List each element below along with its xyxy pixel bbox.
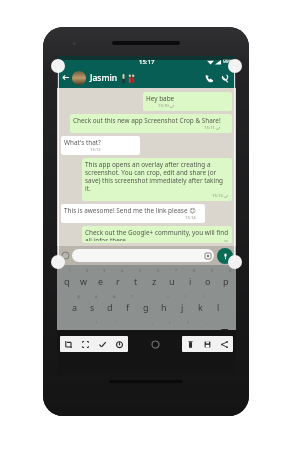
- button[interactable]: 3: [92, 267, 109, 293]
- staticText: ,: [206, 320, 207, 325]
- button[interactable]: Crop handle: [51, 59, 65, 73]
- button[interactable]: Save: [199, 336, 216, 352]
- staticText: c: [128, 328, 133, 340]
- button[interactable]: This app opens an overlay after creating…: [82, 158, 232, 201]
- button[interactable]: What's that?: [61, 136, 140, 155]
- button[interactable]: 2: [75, 267, 92, 293]
- button[interactable]: Contact photo: [72, 71, 86, 85]
- button[interactable]: (: [173, 293, 191, 319]
- staticText: &: [113, 294, 116, 299]
- button[interactable]: @: [66, 293, 83, 319]
- staticText: k: [198, 301, 203, 313]
- staticText: 2: [86, 268, 89, 273]
- button[interactable]: -: [137, 293, 155, 319]
- staticText: w: [80, 275, 88, 287]
- button[interactable]: *: [119, 293, 137, 319]
- staticText: s: [90, 301, 95, 313]
- button[interactable]: This is awesome! Send me the link please…: [61, 204, 205, 223]
- button[interactable]: :: [121, 319, 139, 346]
- button[interactable]: Check out this new app Screenshot Crop &…: [70, 114, 232, 133]
- staticText: 3: [103, 268, 106, 273]
- button[interactable]: ': [209, 293, 227, 319]
- button[interactable]: Crop handle: [51, 255, 65, 269]
- staticText: 8: [193, 268, 196, 273]
- button[interactable]: Attach: [217, 70, 233, 86]
- staticText: 99%: [223, 58, 233, 65]
- button[interactable]: 4: [109, 267, 127, 293]
- button[interactable]: ": [102, 319, 121, 346]
- staticText: Check out this new app Screenshot Crop &…: [73, 116, 221, 125]
- staticText: This is awesome! Send me the link please…: [64, 206, 196, 215]
- button[interactable]: +: [155, 293, 173, 319]
- button[interactable]: &: [101, 293, 119, 319]
- button[interactable]: Camera: [205, 253, 211, 259]
- staticText: t: [134, 275, 138, 287]
- staticText: 15:14: [185, 215, 196, 221]
- staticText: x: [109, 328, 114, 340]
- button[interactable]: Confirm: [94, 336, 111, 352]
- button[interactable]: #: [83, 293, 101, 319]
- button[interactable]: Back: [60, 72, 71, 83]
- button[interactable]: Camera: [72, 249, 214, 262]
- button[interactable]: ;: [139, 319, 157, 346]
- button[interactable]: 1: [58, 267, 75, 293]
- button[interactable]: Share: [216, 336, 233, 352]
- staticText: f: [126, 301, 130, 313]
- staticText: n: [181, 328, 187, 340]
- button[interactable]: Jasmin: [90, 72, 201, 84]
- staticText: 5: [139, 268, 142, 273]
- button[interactable]: Emoji: [60, 250, 71, 261]
- staticText: p: [223, 275, 229, 287]
- button[interactable]: 7: [163, 267, 181, 293]
- button[interactable]: Send voice message: [217, 248, 233, 264]
- button[interactable]: ?123: [59, 351, 87, 368]
- staticText: @: [77, 294, 81, 299]
- button[interactable]: Hey babe: [143, 92, 232, 111]
- button[interactable]: Check out the Google+ community, you wil…: [82, 226, 232, 243]
- button[interactable]: Select all: [77, 336, 94, 352]
- button[interactable]: Crop: [60, 336, 77, 352]
- button[interactable]: Comma: [87, 346, 102, 373]
- staticText: ': [222, 294, 223, 299]
- staticText: g: [143, 301, 149, 313]
- button[interactable]: ): [191, 293, 209, 319]
- button[interactable]: Delete: [182, 336, 199, 352]
- staticText: a: [72, 301, 78, 313]
- staticText: !: [96, 320, 97, 325]
- button[interactable]: Backspace: [211, 319, 235, 346]
- staticText: v: [146, 328, 151, 340]
- button[interactable]: 6: [145, 267, 163, 293]
- button[interactable]: Crop handle: [228, 255, 242, 269]
- button[interactable]: /: [157, 319, 175, 346]
- staticText: ): [203, 294, 205, 299]
- staticText: e: [98, 275, 104, 287]
- staticText: #: [95, 294, 98, 299]
- staticText: Check out the Google+ community, you wil…: [85, 228, 229, 241]
- button[interactable]: 9: [199, 267, 217, 293]
- button[interactable]: 5: [127, 267, 145, 293]
- staticText: 15:13: [212, 193, 223, 199]
- staticText: d: [107, 301, 113, 313]
- button[interactable]: ?: [175, 319, 193, 346]
- staticText: r: [116, 275, 120, 287]
- button[interactable]: 8: [181, 267, 199, 293]
- staticText: m: [198, 328, 207, 340]
- staticText: (: [185, 294, 187, 299]
- button[interactable]: Period: [190, 346, 205, 373]
- button[interactable]: !: [83, 319, 102, 346]
- staticText: 1: [69, 268, 72, 273]
- staticText: What's that?: [64, 138, 101, 147]
- staticText: z: [152, 275, 157, 287]
- button[interactable]: ,: [193, 319, 211, 346]
- button[interactable]: 0: [217, 267, 235, 293]
- button[interactable]: Undo: [111, 336, 128, 352]
- staticText: :: [134, 320, 135, 325]
- button[interactable]: Crop handle: [228, 59, 242, 73]
- staticText: y: [90, 328, 95, 340]
- button[interactable]: Shift: [58, 319, 83, 346]
- staticText: j: [181, 301, 184, 313]
- button[interactable]: Voice call: [201, 70, 217, 86]
